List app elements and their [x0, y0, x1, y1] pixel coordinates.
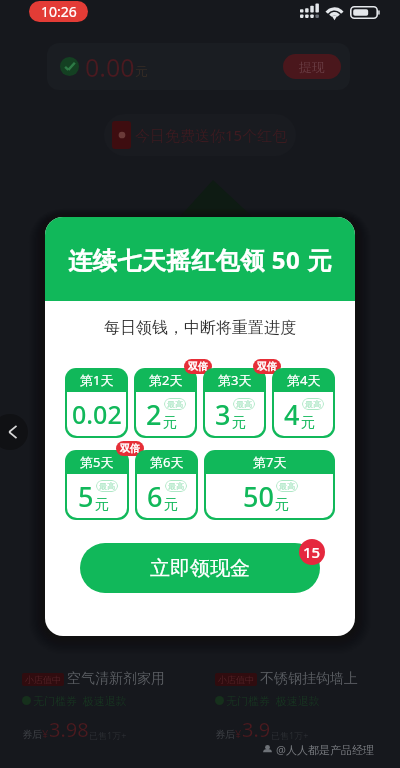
staticText: 无门槛券 极速退款: [33, 693, 127, 708]
staticText: 4: [284, 396, 300, 433]
staticText: 第4天: [287, 371, 321, 389]
staticText: 券后: [22, 728, 42, 741]
staticText: 券后: [215, 728, 235, 741]
staticText: 双倍: [120, 442, 140, 455]
staticText: ¥: [235, 726, 242, 741]
staticText: 最高: [99, 481, 115, 491]
staticText: 元: [164, 496, 178, 514]
button[interactable]: 第4天: [272, 368, 335, 438]
staticText: 立即领现金: [150, 556, 250, 581]
staticText: 最高: [279, 481, 295, 491]
staticText: 第5天: [80, 453, 114, 471]
staticText: 3.98: [49, 716, 89, 743]
staticText: 元: [232, 414, 246, 432]
staticText: 提现: [299, 59, 325, 75]
staticText: 第3天: [218, 371, 252, 389]
staticText: 2: [146, 396, 162, 433]
staticText: 小店值中: [218, 674, 254, 685]
staticText: 元: [275, 496, 289, 514]
staticText: 今日免费送你15个红包: [135, 125, 288, 145]
button[interactable]: Back: [0, 414, 28, 450]
button[interactable]: 第6天: [135, 450, 198, 520]
staticText: 6: [147, 478, 163, 515]
button[interactable]: 今日免费送你15个红包: [104, 114, 296, 156]
staticText: 元: [163, 414, 177, 432]
staticText: 3: [215, 396, 231, 433]
staticText: 无门槛券 极速退款: [226, 693, 320, 708]
button[interactable]: 15 chances remaining: [299, 539, 325, 565]
button[interactable]: 立即领现金: [80, 543, 320, 593]
staticText: 双倍: [188, 360, 208, 373]
staticText: 连续七天摇红包领 50 元: [68, 243, 332, 276]
button[interactable]: 第1天: [65, 368, 128, 438]
staticText: 元: [135, 63, 148, 79]
staticText: 已售1万+: [89, 729, 127, 741]
staticText: 不锈钢挂钩墙上: [260, 670, 358, 688]
staticText: 第7天: [253, 453, 287, 471]
staticText: 第2天: [149, 371, 183, 389]
staticText: 小店值中: [25, 674, 61, 685]
staticText: 10:26: [41, 2, 77, 21]
staticText: 最高: [236, 399, 252, 409]
staticText: 0.02: [72, 397, 122, 431]
staticText: 每日领钱，中断将重置进度: [104, 318, 296, 338]
button[interactable]: 第3天: [203, 368, 266, 438]
staticText: 已售1万+: [271, 729, 309, 741]
button[interactable]: 提现: [283, 54, 341, 79]
staticText: 50: [243, 478, 274, 515]
button[interactable]: 第7天: [204, 450, 335, 520]
staticText: 元: [301, 414, 315, 432]
staticText: 第6天: [150, 453, 184, 471]
button[interactable]: 第2天: [134, 368, 197, 438]
staticText: @人人都是产品经理: [276, 742, 374, 757]
staticText: 最高: [305, 399, 321, 409]
staticText: ¥: [42, 726, 49, 741]
staticText: 第1天: [80, 371, 114, 389]
staticText: 双倍: [257, 360, 277, 373]
staticText: 空气清新剂家用: [67, 670, 165, 688]
staticText: 最高: [168, 481, 184, 491]
staticText: 最高: [167, 399, 183, 409]
staticText: 3.9: [242, 716, 271, 743]
staticText: 15: [303, 542, 321, 562]
button[interactable]: 第5天: [65, 450, 129, 520]
staticText: 5: [78, 478, 94, 515]
staticText: 0.00: [85, 50, 135, 84]
staticText: 元: [95, 496, 109, 514]
